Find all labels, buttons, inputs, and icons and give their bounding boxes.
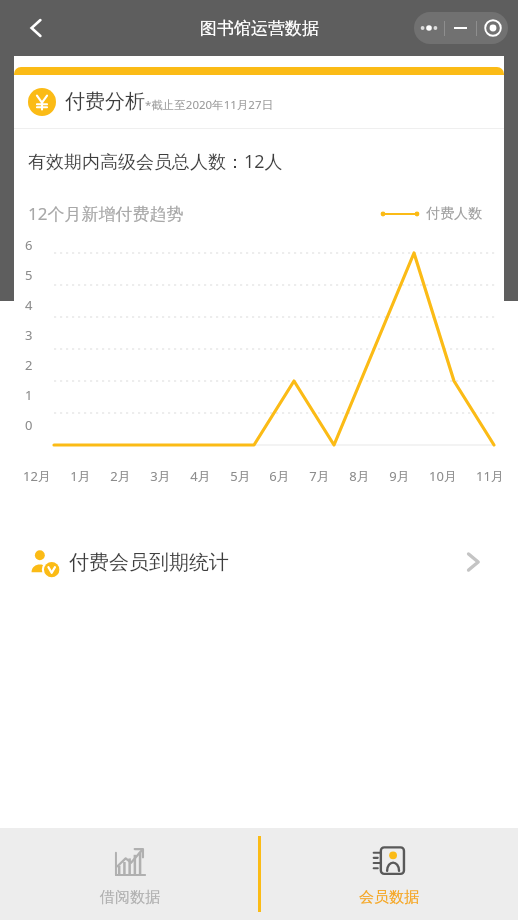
staticText: 1月 bbox=[70, 467, 91, 485]
button[interactable]: 付费会员到期统计 bbox=[14, 524, 504, 600]
staticText: 8月 bbox=[349, 467, 370, 485]
staticText: 有效期内高级会员总人数：12人 bbox=[28, 149, 283, 174]
staticText: 借阅数据 bbox=[100, 888, 160, 907]
staticText: 2 bbox=[25, 356, 33, 374]
button[interactable]: Close bbox=[477, 12, 508, 44]
staticText: 6 bbox=[25, 236, 33, 254]
staticText: 2月 bbox=[110, 467, 131, 485]
staticText: 6月 bbox=[269, 467, 290, 485]
button[interactable]: 借阅数据 bbox=[0, 828, 259, 920]
staticText: 11月 bbox=[476, 467, 504, 485]
staticText: 3 bbox=[25, 326, 33, 344]
staticText: 10月 bbox=[429, 467, 457, 485]
staticText: 0 bbox=[25, 416, 33, 434]
staticText: 5 bbox=[25, 266, 33, 284]
staticText: 12个月新增付费趋势 bbox=[28, 202, 184, 225]
staticText: 3月 bbox=[150, 467, 171, 485]
staticText: 付费会员到期统计 bbox=[69, 550, 229, 575]
button[interactable]: Minimize bbox=[445, 12, 476, 44]
staticText: 5月 bbox=[230, 467, 251, 485]
staticText: 9月 bbox=[389, 467, 410, 485]
staticText: 4 bbox=[25, 296, 33, 314]
button[interactable]: More options bbox=[414, 12, 444, 44]
staticText: 4月 bbox=[190, 467, 211, 485]
staticText: 7月 bbox=[309, 467, 330, 485]
staticText: 图书馆运营数据 bbox=[200, 18, 319, 39]
staticText: 12月 bbox=[23, 467, 51, 485]
button[interactable]: Back bbox=[16, 8, 56, 48]
staticText: 付费分析 bbox=[65, 89, 145, 114]
button[interactable]: 会员数据 bbox=[259, 828, 518, 920]
staticText: 会员数据 bbox=[359, 888, 419, 907]
staticText: 付费人数 bbox=[426, 205, 482, 223]
staticText: 1 bbox=[25, 386, 33, 404]
staticText: *截止至2020年11月27日 bbox=[145, 97, 273, 113]
